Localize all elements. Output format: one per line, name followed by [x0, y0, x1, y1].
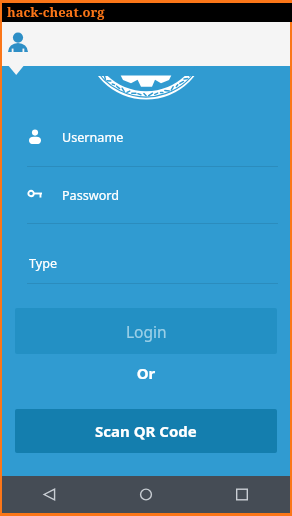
button[interactable]: Login	[15, 308, 277, 354]
staticText: Or	[2, 363, 290, 383]
staticText: Type	[29, 255, 58, 272]
button[interactable]: Scan QR Code	[15, 409, 277, 453]
button[interactable]: Recent apps	[194, 476, 290, 513]
button[interactable]: Home	[98, 476, 194, 513]
staticText: Scan QR Code	[95, 421, 197, 441]
button[interactable]: Back	[2, 476, 98, 513]
staticText: Login	[126, 321, 167, 342]
staticText: Password	[62, 187, 119, 204]
button[interactable]: Type	[2, 249, 290, 289]
button[interactable]: Password	[2, 181, 290, 229]
button[interactable]: Username	[2, 123, 290, 172]
staticText: hack-cheat.org	[7, 3, 105, 21]
staticText: Username	[62, 129, 124, 146]
